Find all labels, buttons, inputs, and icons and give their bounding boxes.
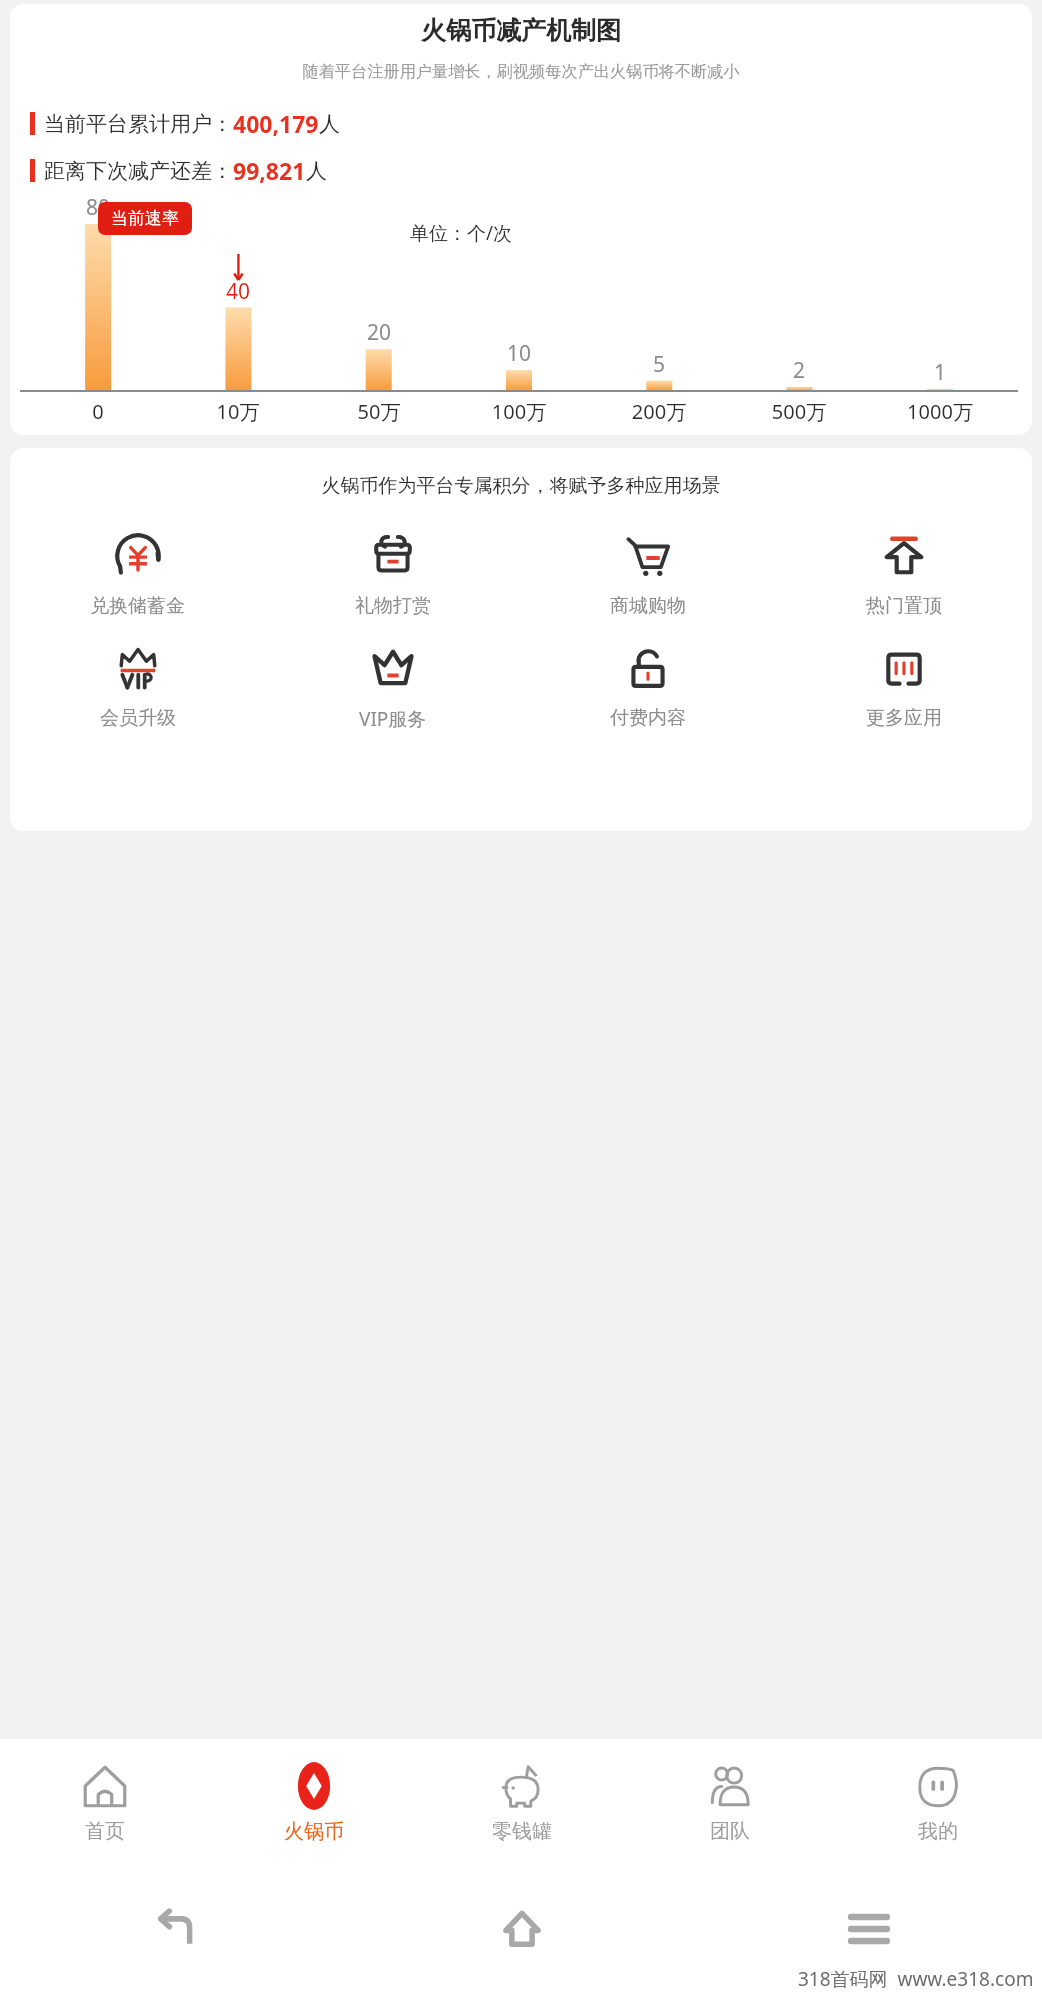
button[interactable]: Recent apps bbox=[695, 1864, 1042, 1994]
staticText: 礼物打赏 bbox=[355, 594, 431, 618]
staticText: 5 bbox=[589, 350, 729, 379]
staticText: 火锅币作为平台专属积分，将赋予多种应用场景 bbox=[10, 474, 1032, 498]
button[interactable]: 零钱罐 bbox=[418, 1739, 626, 1864]
staticText: 首页 bbox=[85, 1819, 125, 1844]
staticText: 随着平台注册用户量增长，刷视频每次产出火锅币将不断减小 bbox=[13, 61, 1029, 81]
staticText: 0 bbox=[28, 398, 168, 425]
staticText: 零钱罐 bbox=[492, 1819, 552, 1844]
staticText: 会员升级 bbox=[100, 706, 176, 730]
button[interactable]: 付费内容 bbox=[520, 640, 776, 730]
button[interactable]: Home bbox=[348, 1864, 695, 1994]
staticText: 200万 bbox=[589, 398, 729, 425]
staticText: 400,179 bbox=[233, 108, 319, 139]
staticText: 20 bbox=[309, 318, 449, 347]
staticText: 40 bbox=[168, 277, 308, 306]
staticText: 团队 bbox=[710, 1819, 750, 1844]
staticText: 1 bbox=[870, 358, 1010, 387]
button[interactable]: 当前速率 bbox=[98, 202, 192, 235]
button[interactable]: 我的 bbox=[834, 1739, 1042, 1864]
staticText: 人 bbox=[306, 158, 327, 184]
staticText: 10 bbox=[449, 339, 589, 368]
staticText: 10万 bbox=[168, 398, 308, 425]
staticText: 付费内容 bbox=[610, 706, 686, 730]
button[interactable]: 热门置顶 bbox=[776, 528, 1032, 618]
staticText: 兑换储蓄金 bbox=[90, 594, 185, 618]
button[interactable]: 会员升级 bbox=[10, 640, 265, 730]
staticText: 单位：个/次 bbox=[410, 220, 513, 246]
button[interactable]: 火锅币 bbox=[209, 1739, 418, 1864]
staticText: 80 bbox=[28, 193, 168, 222]
staticText: 商城购物 bbox=[610, 594, 686, 618]
staticText: 人 bbox=[319, 111, 340, 137]
button[interactable]: 礼物打赏 bbox=[265, 528, 520, 618]
staticText: 当前速率 bbox=[111, 208, 179, 229]
button[interactable]: 首页 bbox=[0, 1739, 209, 1864]
staticText: 100万 bbox=[449, 398, 589, 425]
button[interactable]: 团队 bbox=[626, 1739, 834, 1864]
staticText: 更多应用 bbox=[866, 706, 942, 730]
staticText: VIP服务 bbox=[359, 706, 427, 732]
staticText: 火锅币减产机制图 bbox=[10, 15, 1032, 46]
staticText: 50万 bbox=[309, 398, 449, 425]
staticText: 当前平台累计用户： bbox=[44, 111, 233, 137]
button[interactable]: VIP服务 bbox=[265, 640, 520, 732]
staticText: 热门置顶 bbox=[866, 594, 942, 618]
staticText: 99,821 bbox=[233, 155, 306, 186]
staticText: 距离下次减产还差： bbox=[44, 158, 233, 184]
button[interactable]: 更多应用 bbox=[776, 640, 1032, 730]
staticText: 500万 bbox=[729, 398, 869, 425]
button[interactable]: 商城购物 bbox=[520, 528, 776, 618]
staticText: 2 bbox=[729, 356, 869, 385]
button[interactable]: Back bbox=[0, 1864, 348, 1994]
staticText: 火锅币 bbox=[284, 1819, 344, 1844]
staticText: 我的 bbox=[918, 1819, 958, 1844]
button[interactable]: 兑换储蓄金 bbox=[10, 528, 265, 618]
staticText: 1000万 bbox=[870, 398, 1010, 425]
staticText: 318首码网 www.e318.com bbox=[798, 1966, 1034, 1992]
